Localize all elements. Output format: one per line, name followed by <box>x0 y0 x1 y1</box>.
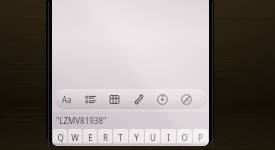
button[interactable]: R <box>98 129 112 145</box>
staticText: O <box>181 132 188 143</box>
button[interactable]: T <box>113 129 128 145</box>
button[interactable]: "LZMV81938" <box>52 112 209 128</box>
button[interactable]: O <box>177 129 192 145</box>
button[interactable]: Camera <box>155 89 170 109</box>
staticText: R <box>103 132 108 143</box>
staticText: U <box>150 132 156 143</box>
staticText: E <box>88 132 93 143</box>
button[interactable] <box>52 0 209 86</box>
button[interactable]: W <box>68 129 82 145</box>
staticText: T <box>118 132 123 143</box>
button[interactable]: P <box>193 129 208 145</box>
button[interactable]: Q <box>53 129 67 145</box>
button[interactable]: Table <box>107 89 122 109</box>
staticText: Y <box>134 132 139 143</box>
button[interactable]: Text formatting <box>59 89 74 109</box>
staticText: "LZMV81938" <box>56 115 107 126</box>
button[interactable]: I <box>161 129 176 145</box>
staticText: I <box>167 132 170 143</box>
button[interactable]: U <box>145 129 160 145</box>
button[interactable]: Y <box>129 129 144 145</box>
button[interactable]: Scan document <box>179 89 194 109</box>
button[interactable]: E <box>83 129 97 145</box>
button[interactable]: More options <box>203 89 207 109</box>
staticText: Q <box>57 132 64 143</box>
staticText: W <box>71 132 79 143</box>
button[interactable]: Attach file <box>131 89 146 109</box>
staticText: P <box>198 132 203 143</box>
button[interactable]: Checklist <box>83 89 98 109</box>
staticText: Aa <box>62 94 72 105</box>
